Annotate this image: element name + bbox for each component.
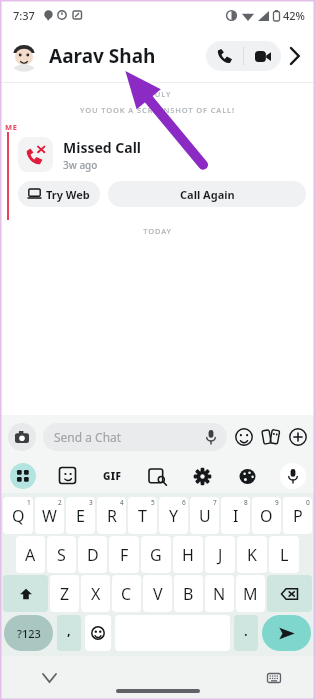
staticText: K	[247, 544, 257, 566]
staticText: 1	[27, 498, 31, 507]
button[interactable]: Emoji	[235, 428, 253, 446]
button[interactable]: Aarav Shah	[49, 43, 206, 69]
button[interactable]: U	[190, 497, 219, 534]
button[interactable]: Sticker	[58, 466, 78, 486]
staticText: F	[120, 544, 129, 566]
staticText: 7	[213, 498, 217, 507]
staticText: Z	[60, 583, 70, 605]
staticText: 0	[306, 498, 310, 507]
button[interactable]: W	[35, 497, 64, 534]
button[interactable]: Call Again	[108, 181, 306, 207]
button[interactable]: Apps	[10, 463, 36, 489]
staticText: 6	[182, 498, 186, 507]
button[interactable]: E	[66, 497, 95, 534]
staticText: J	[218, 544, 223, 566]
button[interactable]: O	[252, 497, 281, 534]
button[interactable]: H	[173, 536, 203, 573]
staticText: YOU TOOK A SCREENSHOT OF CALL!	[0, 105, 315, 115]
staticText: 7:37	[13, 8, 35, 23]
staticText: A	[25, 544, 36, 566]
button[interactable]: Switch keyboard	[263, 667, 285, 689]
staticText: 2	[58, 498, 62, 507]
button[interactable]: Camera	[8, 423, 36, 451]
staticText: Y	[169, 505, 179, 527]
staticText: U	[199, 505, 211, 527]
staticText: GIF	[103, 469, 122, 483]
staticText: V	[153, 583, 163, 605]
button[interactable]: Voice call	[206, 41, 243, 71]
button[interactable]: Shift	[3, 575, 48, 612]
button[interactable]: Missed Call	[18, 137, 306, 172]
staticText: ME	[5, 122, 18, 132]
staticText: Call Again	[180, 187, 235, 202]
staticText: 8	[244, 498, 248, 507]
button[interactable]: Settings	[194, 468, 211, 485]
button[interactable]: R	[97, 497, 126, 534]
staticText: G	[150, 544, 162, 566]
button[interactable]: P	[283, 497, 312, 534]
button[interactable]: B	[174, 575, 203, 612]
staticText: ?123	[17, 626, 41, 641]
staticText: I	[233, 505, 239, 527]
staticText: 9	[275, 498, 279, 507]
button[interactable]: ?123	[4, 615, 53, 651]
staticText: R	[107, 505, 117, 527]
button[interactable]: Try Web	[18, 181, 100, 207]
button[interactable]: D	[78, 536, 107, 573]
staticText: D	[87, 544, 99, 566]
staticText: P	[293, 505, 303, 527]
button[interactable]: J	[205, 536, 235, 573]
button[interactable]: Hide keyboard	[38, 667, 60, 689]
button[interactable]: Voice message	[206, 430, 216, 444]
button[interactable]: Stickers	[262, 428, 280, 446]
button[interactable]: G	[141, 536, 171, 573]
button[interactable]: Backspace	[267, 575, 312, 612]
button[interactable]: Y	[159, 497, 188, 534]
button[interactable]: K	[237, 536, 267, 573]
button[interactable]: Send a Chat	[54, 423, 216, 451]
staticText: .	[244, 622, 248, 640]
button[interactable]: T	[128, 497, 157, 534]
staticText: ,	[67, 621, 71, 639]
staticText: C	[121, 583, 132, 605]
button[interactable]: V	[143, 575, 172, 612]
button[interactable]: Z	[50, 575, 79, 612]
staticText: H	[182, 544, 194, 566]
button[interactable]: GIF	[103, 469, 122, 483]
staticText: N	[213, 583, 226, 605]
button[interactable]: S	[47, 536, 76, 573]
button[interactable]: .	[234, 615, 258, 651]
button[interactable]: ,	[57, 615, 81, 651]
button[interactable]: M	[236, 575, 265, 612]
button[interactable]: X	[81, 575, 110, 612]
button[interactable]: Search	[148, 467, 167, 486]
staticText: S	[57, 544, 66, 566]
staticText: Q	[12, 505, 25, 527]
button[interactable]: Video call	[244, 41, 281, 71]
staticText: 3 JULY	[0, 89, 315, 99]
staticText: 5	[151, 498, 155, 507]
button[interactable]: C	[112, 575, 141, 612]
button[interactable]: I	[221, 497, 250, 534]
button[interactable]: More	[281, 43, 307, 69]
button[interactable]: L	[269, 536, 299, 573]
staticText: O	[260, 505, 273, 527]
staticText: 3w ago	[63, 158, 98, 172]
staticText: X	[91, 583, 101, 605]
staticText: TODAY	[0, 226, 315, 236]
staticText: Try Web	[46, 187, 90, 202]
button[interactable]: Microphone	[280, 463, 306, 489]
button[interactable]: Palette	[239, 468, 256, 485]
button[interactable]: Send	[262, 615, 311, 651]
button[interactable]: F	[109, 536, 139, 573]
button[interactable]: Profile avatar	[8, 40, 40, 72]
button[interactable]: A	[16, 536, 45, 573]
staticText: T	[138, 505, 147, 527]
staticText: M	[243, 583, 258, 605]
staticText: 42%	[283, 8, 305, 23]
button[interactable]: Q	[3, 497, 33, 534]
button[interactable]: Emoji key	[85, 615, 111, 651]
button[interactable]: N	[205, 575, 234, 612]
button[interactable]: Add	[289, 428, 307, 446]
